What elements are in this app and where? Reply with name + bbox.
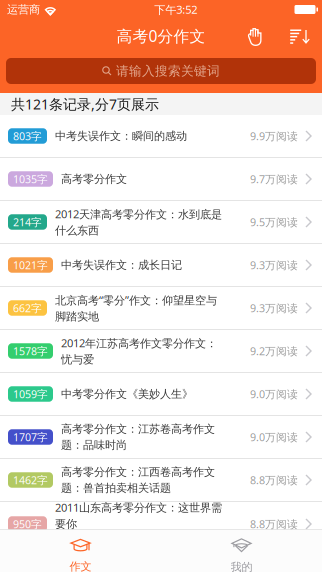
button[interactable]: 803字 [0, 115, 322, 158]
staticText: 中考零分作文《美妙人生》 [61, 387, 193, 401]
staticText: 北京高考“零分”作文：仰望星空与 [55, 292, 217, 308]
staticText: 高考零分作文 [61, 172, 127, 186]
staticText: 1035字 [13, 172, 48, 186]
staticText: 我的 [230, 560, 252, 572]
staticText: 9.3万阅读 [250, 258, 298, 272]
staticText: 作文 [69, 559, 91, 572]
staticText: 1707字 [13, 430, 48, 444]
staticText: 高考0分作文 [116, 25, 205, 47]
staticText: 950字 [13, 517, 42, 531]
button[interactable]: 请输入搜索关键词 [0, 55, 322, 93]
staticText: 1021字 [13, 258, 48, 272]
button[interactable]: 950字 [0, 502, 322, 547]
button[interactable]: 1707字 [0, 416, 322, 459]
staticText: 9.5万阅读 [250, 215, 298, 229]
staticText: 高考零分作文：江西卷高考作文 [61, 465, 215, 479]
staticText: 2012年江苏高考作文零分作文： [61, 335, 217, 351]
staticText: 那2…10 [55, 533, 93, 548]
staticText: 1462字 [13, 473, 48, 487]
staticText: 8.8万阅读 [250, 517, 298, 531]
staticText: 请输入搜索关键词 [116, 63, 220, 79]
staticText: 9.2万阅读 [250, 344, 298, 358]
staticText: 9.7万阅读 [250, 172, 298, 186]
button[interactable]: 我的 [161, 530, 322, 572]
button[interactable]: 收藏 [238, 19, 272, 54]
staticText: 662字 [13, 301, 42, 315]
staticText: 214字 [13, 215, 42, 229]
staticText: 1578字 [13, 344, 48, 358]
staticText: 下午3:52 [154, 2, 197, 17]
button[interactable]: 1021字 [0, 244, 322, 287]
staticText: 9.0万阅读 [250, 387, 298, 401]
staticText: 题：兽首拍卖相关话题 [61, 481, 171, 495]
staticText: 2011山东高考零分作文：这世界需 [55, 500, 222, 515]
staticText: 脚踏实地 [55, 310, 99, 324]
staticText: 1059字 [13, 387, 48, 401]
button[interactable]: 662字 [0, 287, 322, 330]
button[interactable]: 排序 [283, 19, 317, 54]
staticText: 共121条记录,分7页展示 [11, 94, 159, 113]
button[interactable]: 1578字 [0, 330, 322, 373]
staticText: 高考零分作文：江苏卷高考作文 [61, 422, 215, 436]
staticText: 2012天津高考零分作文：水到底是 [55, 206, 222, 222]
staticText: 运营商 [7, 2, 40, 16]
button[interactable]: 1035字 [0, 158, 322, 201]
staticText: 中考失误作文：瞬间的感动 [55, 129, 187, 143]
staticText: 803字 [13, 129, 42, 143]
staticText: 要你 [55, 517, 77, 531]
staticText: 9.0万阅读 [250, 430, 298, 444]
staticText: 题：品味时尚 [61, 438, 127, 452]
staticText: 中考失误作文：成长日记 [61, 258, 182, 272]
button[interactable]: 1462字 [0, 459, 322, 502]
staticText: 9.9万阅读 [250, 129, 298, 143]
staticText: 8.8万阅读 [250, 473, 298, 487]
staticText: 忧与爱 [61, 353, 94, 367]
staticText: 9.3万阅读 [250, 301, 298, 315]
button[interactable]: 作文 [0, 530, 161, 572]
button[interactable]: 1059字 [0, 373, 322, 416]
button[interactable]: 214字 [0, 201, 322, 244]
staticText: 什么东西 [55, 224, 99, 238]
